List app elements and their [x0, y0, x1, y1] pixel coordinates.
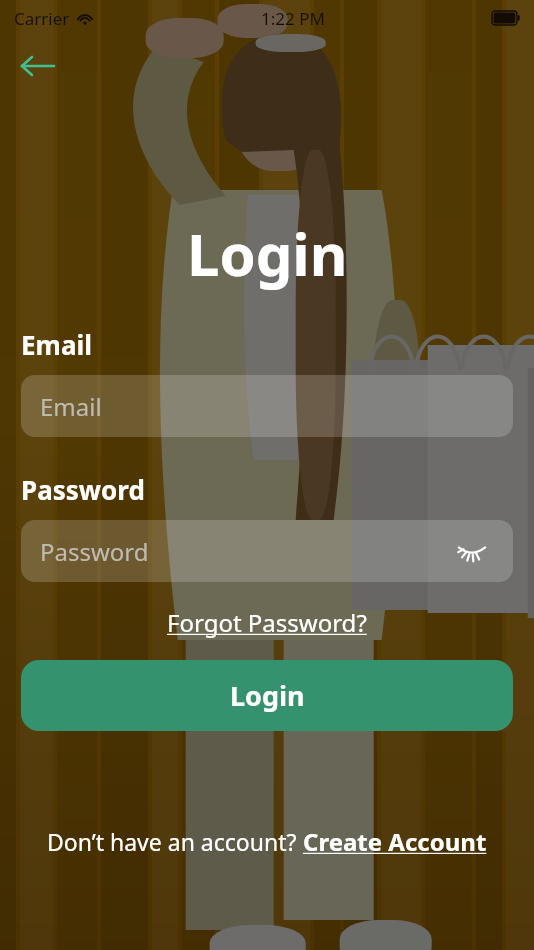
staticText: 1:22 PM: [261, 7, 325, 30]
button[interactable]: Email: [21, 375, 513, 437]
staticText: Forgot Password?: [167, 606, 367, 639]
button[interactable]: Create Account: [303, 825, 487, 858]
staticText: Carrier: [14, 7, 70, 30]
button[interactable]: Password: [21, 520, 513, 582]
staticText: Password: [21, 472, 145, 507]
staticText: Email: [40, 390, 102, 423]
staticText: Login: [187, 214, 348, 293]
staticText: Password: [40, 535, 149, 568]
button[interactable]: Back: [10, 44, 66, 88]
staticText: Create Account: [303, 825, 487, 858]
staticText: Login: [230, 677, 305, 714]
staticText: Email: [21, 327, 93, 362]
button[interactable]: Login: [21, 660, 513, 731]
staticText: Don’t have an account?: [47, 826, 303, 857]
button[interactable]: Show password: [453, 532, 491, 570]
button[interactable]: Forgot Password?: [159, 602, 375, 643]
